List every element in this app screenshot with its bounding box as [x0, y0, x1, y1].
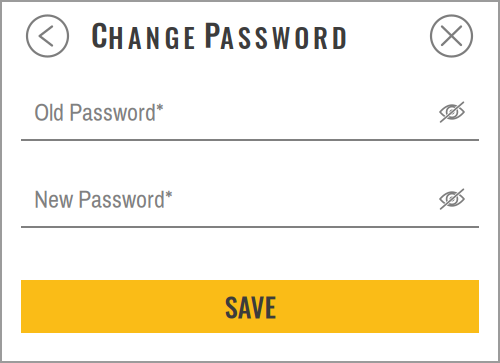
staticText: SAVE — [224, 287, 275, 326]
button[interactable]: Show password — [434, 96, 470, 128]
staticText: New Password* — [34, 183, 173, 215]
staticText: P — [204, 11, 220, 57]
button[interactable]: Show password — [434, 183, 470, 215]
button[interactable]: Back — [0, 15, 68, 56]
button[interactable]: SAVE — [21, 280, 479, 333]
staticText: C — [91, 11, 108, 57]
staticText: ASSWORD — [220, 17, 347, 57]
staticText: HANGE — [108, 17, 204, 57]
staticText: Old Password* — [34, 96, 164, 128]
button[interactable]: Close — [431, 15, 500, 56]
